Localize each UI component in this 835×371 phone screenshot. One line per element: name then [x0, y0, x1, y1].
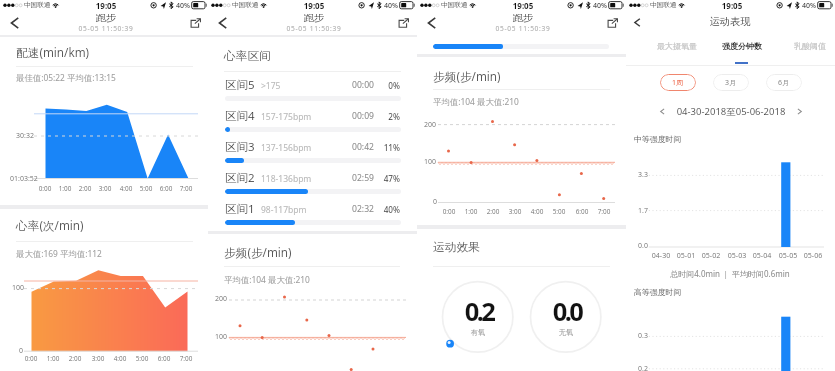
- staticText: 05-01: [671, 250, 701, 260]
- staticText: 中等强度时间: [634, 134, 682, 144]
- button[interactable]: Back: [214, 14, 232, 32]
- staticText: 100: [424, 157, 437, 167]
- staticText: 40%: [384, 1, 398, 11]
- button[interactable]: 区间5: [208, 73, 417, 100]
- staticText: 0%: [374, 80, 400, 91]
- staticText: 跑步: [86, 11, 126, 24]
- button[interactable]: Back: [423, 14, 441, 32]
- staticText: 0:00: [16, 354, 46, 363]
- staticText: 02:32: [333, 203, 374, 215]
- staticText: 总时间4.0min ｜ 平均时间0.6min: [630, 268, 830, 279]
- staticText: 04-30: [646, 250, 676, 260]
- staticText: 1:00: [456, 207, 486, 216]
- staticText: 157-175bpm: [261, 111, 312, 123]
- staticText: 乳酸阈值: [794, 41, 826, 51]
- staticText: 2:00: [70, 184, 100, 193]
- staticText: 0.0: [527, 294, 607, 329]
- staticText: 30:32: [16, 131, 34, 141]
- staticText: 118-136bpm: [261, 173, 312, 185]
- staticText: 01:03:52: [10, 174, 38, 184]
- staticText: 0:00: [434, 207, 464, 216]
- button[interactable]: 1周: [660, 74, 696, 91]
- button[interactable]: 区间3: [208, 135, 417, 162]
- staticText: 配速(min/km): [16, 44, 90, 60]
- staticText: 05-02: [696, 250, 726, 260]
- staticText: 6:00: [149, 354, 179, 363]
- staticText: 强度分钟数: [722, 41, 762, 51]
- staticText: 05-03: [722, 250, 752, 260]
- button[interactable]: Back: [6, 14, 24, 32]
- staticText: >175: [261, 80, 281, 92]
- staticText: 中国联通: [232, 1, 259, 9]
- staticText: 0.2: [439, 294, 519, 329]
- staticText: 中国联通: [650, 1, 677, 9]
- staticText: 4:00: [522, 207, 552, 216]
- staticText: 05-05 11:50:39: [274, 24, 354, 33]
- staticText: 40%: [374, 204, 400, 215]
- staticText: 3月: [725, 78, 737, 88]
- button[interactable]: 区间1: [208, 197, 417, 224]
- staticText: 4:00: [111, 184, 141, 193]
- staticText: 200: [215, 294, 228, 304]
- button[interactable]: 3月: [713, 74, 749, 91]
- staticText: 0.3: [638, 331, 648, 341]
- button[interactable]: Previous week: [658, 107, 667, 116]
- staticText: 运动表现: [695, 15, 765, 28]
- staticText: 区间1: [225, 201, 255, 217]
- button[interactable]: 区间2: [208, 166, 417, 193]
- button[interactable]: 乳酸阈值: [785, 36, 835, 56]
- staticText: 步频(步/min): [433, 68, 501, 84]
- staticText: 跑步: [294, 11, 334, 24]
- staticText: 100: [12, 283, 25, 293]
- staticText: 0.0: [638, 241, 648, 251]
- button[interactable]: 6月: [766, 74, 802, 91]
- staticText: 00:00: [333, 79, 374, 91]
- staticText: 最佳值:05:22 平均值:13:15: [16, 72, 116, 83]
- staticText: 5:00: [127, 354, 157, 363]
- staticText: 6:00: [151, 184, 181, 193]
- staticText: 平均值:104 最大值:210: [433, 96, 519, 107]
- staticText: 19:05: [503, 0, 543, 11]
- staticText: 无氧: [546, 328, 586, 337]
- staticText: 1周: [672, 78, 684, 88]
- staticText: 区间5: [225, 77, 255, 93]
- staticText: 7:00: [171, 354, 201, 363]
- staticText: 步频(步/min): [224, 244, 292, 260]
- button[interactable]: Share: [190, 18, 201, 28]
- staticText: 0: [433, 197, 438, 207]
- staticText: 心率(次/min): [16, 217, 84, 233]
- staticText: 200: [424, 120, 437, 130]
- staticText: 5:00: [131, 184, 161, 193]
- staticText: 2:00: [478, 207, 508, 216]
- button[interactable]: 强度分钟数: [713, 36, 771, 56]
- staticText: 区间4: [225, 108, 255, 124]
- button[interactable]: 最大摄氧量: [649, 36, 705, 56]
- button[interactable]: Share: [398, 18, 409, 28]
- staticText: 区间3: [225, 139, 255, 155]
- staticText: 04-30-2018至05-06-2018: [656, 105, 806, 118]
- staticText: 02:59: [333, 172, 374, 184]
- staticText: 最大值:169 平均值:112: [16, 248, 102, 259]
- staticText: 中国联通: [24, 1, 51, 9]
- staticText: 40%: [802, 1, 816, 11]
- button[interactable]: 区间4: [208, 104, 417, 131]
- staticText: 2%: [374, 111, 400, 122]
- staticText: 1.7: [638, 206, 648, 216]
- staticText: 4:00: [105, 354, 135, 363]
- staticText: 47%: [374, 173, 400, 184]
- staticText: 40%: [593, 1, 607, 11]
- staticText: 最大摄氧量: [657, 41, 697, 51]
- staticText: 7:00: [589, 207, 619, 216]
- staticText: 5:00: [544, 207, 574, 216]
- staticText: 19:05: [294, 0, 334, 11]
- staticText: 19:05: [712, 0, 752, 11]
- button[interactable]: Back: [631, 16, 644, 29]
- button[interactable]: Share: [607, 18, 618, 28]
- staticText: 3:00: [90, 184, 120, 193]
- staticText: 区间2: [225, 170, 255, 186]
- staticText: 137-156bpm: [261, 142, 312, 154]
- staticText: 有氧: [458, 328, 498, 337]
- button[interactable]: Next week: [795, 107, 804, 116]
- staticText: 05-06: [798, 250, 828, 260]
- staticText: 6月: [778, 78, 790, 88]
